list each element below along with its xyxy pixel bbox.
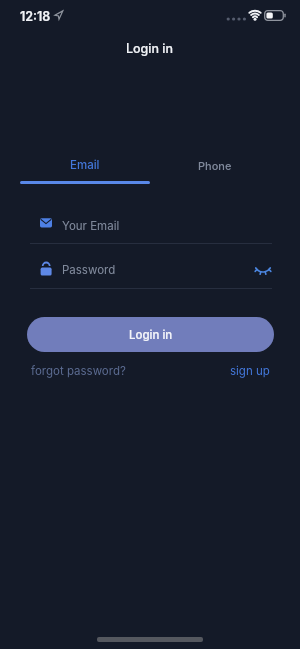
staticText: sign up bbox=[230, 364, 270, 378]
staticText: Your Email bbox=[62, 219, 120, 233]
staticText: 12:18 bbox=[20, 9, 51, 24]
staticText: Login in bbox=[126, 41, 174, 56]
button[interactable] bbox=[253, 267, 273, 278]
button[interactable]: forgot password? bbox=[25, 360, 132, 382]
staticText: Phone bbox=[198, 159, 232, 172]
button[interactable]: Phone bbox=[150, 154, 280, 176]
staticText: forgot password? bbox=[31, 364, 126, 378]
staticText: Password bbox=[62, 263, 116, 277]
button[interactable]: Login in bbox=[27, 317, 274, 352]
button[interactable]: sign up bbox=[224, 360, 276, 382]
button[interactable]: Password bbox=[30, 255, 272, 287]
button[interactable]: Email bbox=[20, 154, 150, 176]
staticText: Email bbox=[70, 158, 100, 172]
button[interactable]: Your Email bbox=[30, 208, 272, 242]
staticText: Login in bbox=[129, 328, 173, 342]
